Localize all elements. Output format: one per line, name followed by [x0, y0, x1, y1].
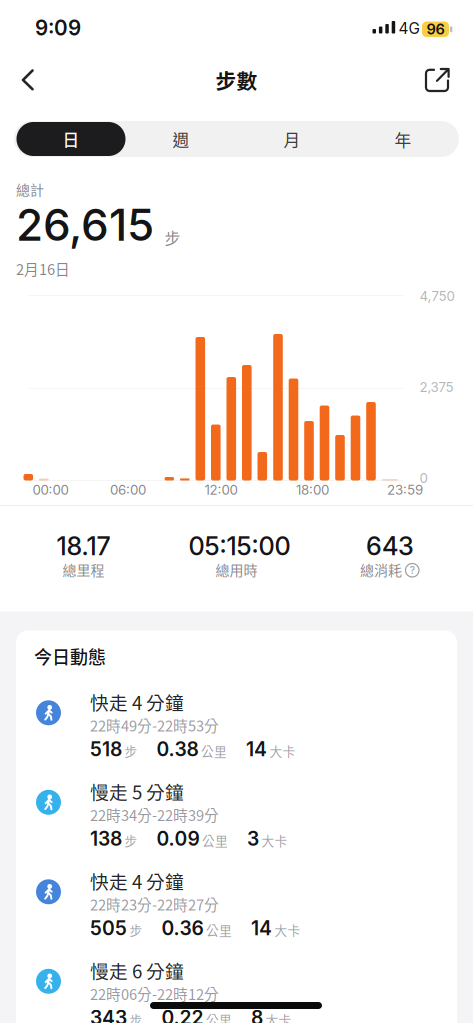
- staticText: 0.22: [161, 1006, 203, 1023]
- staticText: ?: [410, 564, 415, 576]
- staticText: 3: [247, 827, 259, 850]
- staticText: 步: [129, 920, 142, 939]
- staticText: 年: [394, 127, 411, 151]
- staticText: 總計: [16, 179, 44, 199]
- staticText: 14: [251, 916, 272, 940]
- staticText: 0.09: [156, 827, 199, 850]
- staticText: 快走 4 分鐘: [90, 867, 184, 894]
- staticText: 22時06分-22時12分: [90, 983, 219, 1004]
- staticText: 慢走 6 分鐘: [90, 957, 184, 984]
- staticText: 138: [90, 827, 122, 850]
- staticText: 步: [124, 831, 137, 849]
- staticText: 總用時: [215, 559, 257, 580]
- staticText: 4G: [398, 19, 419, 38]
- staticText: 步數: [215, 65, 257, 95]
- staticText: 12:00: [204, 482, 237, 498]
- staticText: 0.38: [156, 737, 198, 761]
- staticText: 14: [246, 737, 267, 761]
- staticText: 4,750: [419, 288, 454, 304]
- staticText: 2,375: [419, 379, 453, 395]
- staticText: 22時23分-22時27分: [90, 893, 219, 915]
- staticText: 慢走 5 分鐘: [90, 778, 184, 805]
- staticText: 518: [90, 737, 122, 761]
- staticText: 00:00: [32, 482, 68, 498]
- staticText: 05:15:00: [188, 531, 290, 561]
- staticText: 2月16日: [16, 258, 70, 279]
- staticText: 大卡: [269, 741, 295, 760]
- staticText: 月: [283, 127, 300, 151]
- staticText: 快走 4 分鐘: [90, 688, 184, 715]
- staticText: 26,615: [16, 198, 154, 251]
- staticText: 22時49分-22時53分: [90, 714, 219, 736]
- staticText: 大卡: [274, 920, 300, 939]
- staticText: 343: [90, 1006, 127, 1023]
- staticText: 18.17: [56, 531, 110, 561]
- staticText: 公里: [206, 1010, 232, 1023]
- staticText: 步: [164, 226, 180, 249]
- staticText: 643: [366, 531, 414, 561]
- staticText: 步: [129, 1010, 142, 1023]
- staticText: 0: [419, 470, 427, 486]
- staticText: 9:09: [35, 15, 81, 40]
- staticText: 23:59: [387, 482, 423, 498]
- staticText: 06:00: [110, 482, 146, 498]
- staticText: 今日動態: [34, 643, 106, 669]
- staticText: 0.36: [161, 916, 203, 940]
- staticText: 公里: [202, 831, 228, 849]
- staticText: 週: [172, 127, 189, 151]
- staticText: 8: [251, 1006, 263, 1023]
- staticText: 大卡: [261, 831, 287, 849]
- staticText: 公里: [201, 741, 227, 760]
- staticText: 日: [62, 127, 79, 151]
- staticText: 總消耗: [360, 559, 402, 580]
- staticText: 步: [124, 741, 137, 760]
- staticText: 505: [90, 916, 127, 940]
- staticText: 大卡: [265, 1010, 291, 1023]
- staticText: 總里程: [62, 559, 104, 580]
- staticText: 公里: [206, 920, 232, 939]
- staticText: 22時34分-22時39分: [90, 804, 219, 825]
- staticText: 18:00: [296, 482, 329, 498]
- staticText: 96: [426, 20, 444, 38]
